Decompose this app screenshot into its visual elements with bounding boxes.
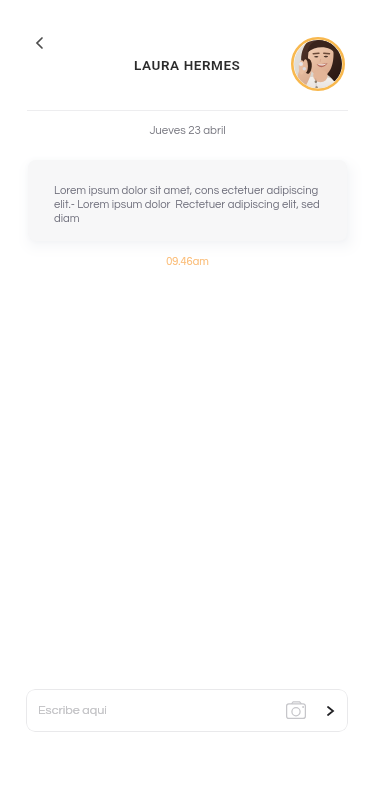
button[interactable]: Send message	[318, 699, 342, 723]
button[interactable]: Lorem ipsum dolor sit amet, cons ectetue…	[28, 160, 347, 241]
button[interactable]: Profile photo	[291, 37, 345, 91]
staticText: 09.46am	[0, 256, 375, 267]
button[interactable]: Escribe aqui	[26, 689, 348, 732]
staticText: Lorem ipsum dolor sit amet, cons ectetue…	[54, 185, 328, 225]
staticText: LAURA HERMES	[134, 57, 241, 73]
button[interactable]: Back	[24, 28, 54, 58]
button[interactable]: Attach photo	[283, 697, 309, 723]
staticText: Escribe aqui	[38, 704, 107, 717]
staticText: Jueves 23 abril	[0, 125, 375, 137]
